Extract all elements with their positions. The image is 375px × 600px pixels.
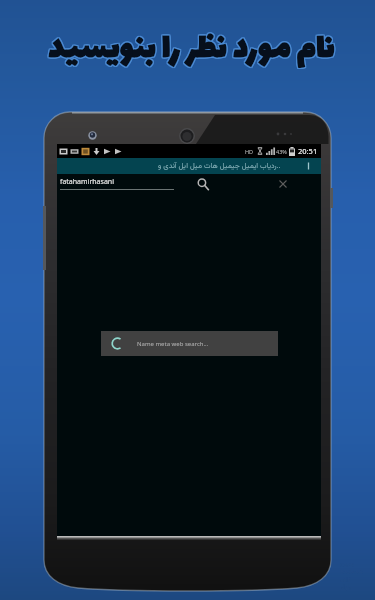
staticText: fatahamirhasani: [60, 177, 114, 187]
staticText: نام مورد نظر را بنویسید: [49, 21, 336, 79]
staticText: HD: [245, 148, 254, 155]
staticText: 43%: [276, 148, 287, 155]
button[interactable]: Search: [194, 175, 212, 193]
staticText: ردیاب ایمیل جیمیل هات میل ایل آندی و..: [158, 160, 281, 172]
staticText: نام مورد نظر را بنویسید: [48, 21, 335, 79]
staticText: نام مورد نظر را بنویسید: [49, 20, 336, 78]
button[interactable]: ردیاب ایمیل جیمیل هات میل ایل آندی و..: [57, 158, 281, 174]
button[interactable]: Clear: [275, 176, 291, 192]
staticText: نام مورد نظر را بنویسید: [47, 21, 334, 79]
button[interactable]: More options: [301, 158, 315, 174]
staticText: نام مورد نظر را بنویسید: [48, 22, 335, 80]
staticText: نام مورد نظر را بنویسید: [47, 20, 334, 78]
staticText: نام مورد نظر را بنویسید: [48, 20, 335, 78]
button[interactable]: fatahamirhasani: [60, 174, 174, 194]
staticText: نام مورد نظر را بنویسید: [47, 22, 334, 80]
staticText: 20:51: [298, 146, 318, 156]
staticText: Name meta web search...: [137, 340, 209, 348]
staticText: نام مورد نظر را بنویسید: [49, 22, 336, 80]
